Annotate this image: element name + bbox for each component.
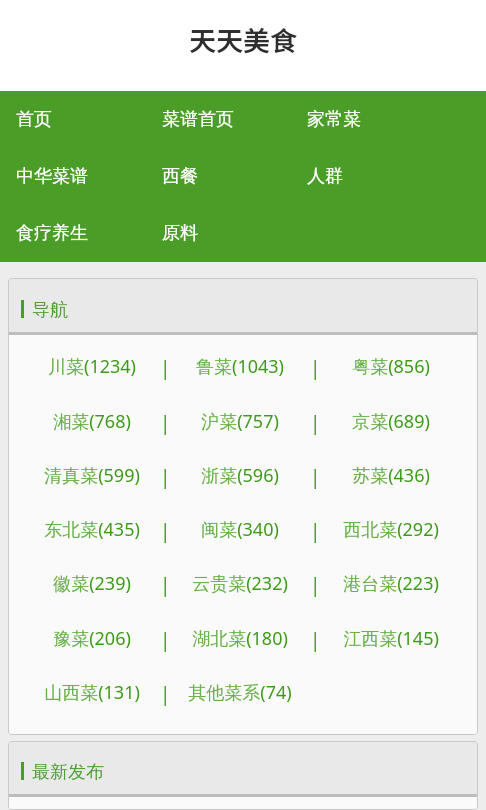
staticText: 豫菜(206) bbox=[53, 626, 131, 651]
staticText: | bbox=[310, 627, 320, 653]
staticText: 最新发布 bbox=[32, 761, 104, 784]
button[interactable]: 其他菜系(74) bbox=[165, 665, 315, 719]
button[interactable]: 家常菜 bbox=[307, 91, 452, 148]
staticText: | bbox=[160, 681, 170, 707]
staticText: 导航 bbox=[32, 299, 68, 322]
staticText: | bbox=[160, 464, 170, 490]
button[interactable]: 江西菜(145) bbox=[316, 611, 466, 665]
button[interactable]: 京菜(689) bbox=[316, 394, 466, 448]
staticText: 闽菜(340) bbox=[201, 517, 279, 542]
button[interactable]: 清真菜(599) bbox=[17, 448, 167, 502]
button[interactable]: 最新发布 bbox=[9, 742, 477, 794]
button[interactable]: 徽菜(239) bbox=[17, 556, 167, 610]
staticText: 首页 bbox=[16, 108, 52, 131]
staticText: 湘菜(768) bbox=[53, 409, 131, 434]
staticText: 粤菜(856) bbox=[352, 354, 430, 379]
staticText: 中华菜谱 bbox=[16, 165, 88, 188]
button[interactable]: 食疗养生 bbox=[16, 205, 162, 262]
staticText: 原料 bbox=[162, 222, 198, 245]
button[interactable]: 港台菜(223) bbox=[316, 556, 466, 610]
button[interactable]: 豫菜(206) bbox=[17, 611, 167, 665]
staticText: 其他菜系(74) bbox=[188, 680, 292, 705]
button[interactable]: 沪菜(757) bbox=[165, 394, 315, 448]
button[interactable]: 闽菜(340) bbox=[165, 502, 315, 556]
button[interactable]: 浙菜(596) bbox=[165, 448, 315, 502]
button[interactable]: 山西菜(131) bbox=[17, 665, 167, 719]
staticText: | bbox=[160, 627, 170, 653]
staticText: 川菜(1234) bbox=[48, 354, 136, 379]
button[interactable]: 鲁菜(1043) bbox=[165, 339, 315, 393]
button[interactable]: 苏菜(436) bbox=[316, 448, 466, 502]
button[interactable]: 西北菜(292) bbox=[316, 502, 466, 556]
staticText: 清真菜(599) bbox=[44, 463, 140, 488]
staticText: 港台菜(223) bbox=[343, 571, 439, 596]
staticText: 家常菜 bbox=[307, 108, 361, 131]
staticText: 沪菜(757) bbox=[201, 409, 279, 434]
staticText: 京菜(689) bbox=[352, 409, 430, 434]
staticText: 食疗养生 bbox=[16, 222, 88, 245]
button[interactable]: 导航 bbox=[9, 279, 477, 332]
button[interactable]: 中华菜谱 bbox=[16, 148, 162, 205]
button[interactable]: 首页 bbox=[16, 91, 162, 148]
staticText: | bbox=[310, 518, 320, 544]
staticText: | bbox=[310, 410, 320, 436]
staticText: 西北菜(292) bbox=[343, 517, 439, 542]
staticText: | bbox=[310, 572, 320, 598]
button[interactable]: 原料 bbox=[162, 205, 307, 262]
staticText: 菜谱首页 bbox=[162, 108, 234, 131]
staticText: | bbox=[310, 355, 320, 381]
staticText: 江西菜(145) bbox=[343, 626, 439, 651]
staticText: 山西菜(131) bbox=[44, 680, 140, 705]
button[interactable]: 湖北菜(180) bbox=[165, 611, 315, 665]
staticText: | bbox=[160, 410, 170, 436]
button[interactable]: 粤菜(856) bbox=[316, 339, 466, 393]
button[interactable]: 菜谱首页 bbox=[162, 91, 307, 148]
staticText: 浙菜(596) bbox=[201, 463, 279, 488]
button[interactable]: 东北菜(435) bbox=[17, 502, 167, 556]
staticText: 徽菜(239) bbox=[53, 571, 131, 596]
staticText: 东北菜(435) bbox=[44, 517, 140, 542]
button[interactable]: 云贵菜(232) bbox=[165, 556, 315, 610]
button[interactable]: 西餐 bbox=[162, 148, 307, 205]
button[interactable]: 湘菜(768) bbox=[17, 394, 167, 448]
staticText: 人群 bbox=[307, 165, 343, 188]
staticText: | bbox=[310, 464, 320, 490]
staticText: | bbox=[160, 572, 170, 598]
staticText: 西餐 bbox=[162, 165, 198, 188]
button[interactable]: 川菜(1234) bbox=[17, 339, 167, 393]
staticText: 湖北菜(180) bbox=[192, 626, 288, 651]
staticText: 鲁菜(1043) bbox=[196, 354, 284, 379]
button[interactable]: 人群 bbox=[307, 148, 452, 205]
staticText: 云贵菜(232) bbox=[192, 571, 288, 596]
staticText: | bbox=[160, 518, 170, 544]
staticText: 苏菜(436) bbox=[352, 463, 430, 488]
staticText: 天天美食 bbox=[189, 20, 297, 59]
staticText: | bbox=[160, 355, 170, 381]
